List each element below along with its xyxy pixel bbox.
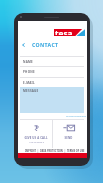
- staticText: CONTACT: [32, 41, 59, 48]
- staticText: tesa: [55, 28, 73, 35]
- button[interactable]: MESSAGE: [20, 87, 84, 113]
- staticText: GIVE US A CALL: [24, 136, 48, 140]
- button[interactable]: PHONE: [20, 66, 84, 76]
- button[interactable]: SEND: [53, 120, 84, 147]
- staticText: +49 40 4909 0: [29, 141, 44, 144]
- button[interactable]: IMPRINT | DATA PROTECTION | TERMS OF USE: [25, 149, 85, 152]
- staticText: SEND: [64, 136, 73, 140]
- button[interactable]: NAME: [20, 56, 84, 66]
- staticText: PHONE: [23, 70, 35, 74]
- button[interactable]: GIVE US A CALL: [20, 120, 52, 147]
- staticText: NAME: [23, 60, 34, 64]
- button[interactable]: E-MAIL: [20, 77, 84, 87]
- staticText: 0/1000 characters: [66, 114, 87, 117]
- button[interactable]: Back: [19, 40, 27, 49]
- staticText: MESSAGE: [23, 89, 39, 93]
- staticText: E-MAIL: [23, 81, 35, 85]
